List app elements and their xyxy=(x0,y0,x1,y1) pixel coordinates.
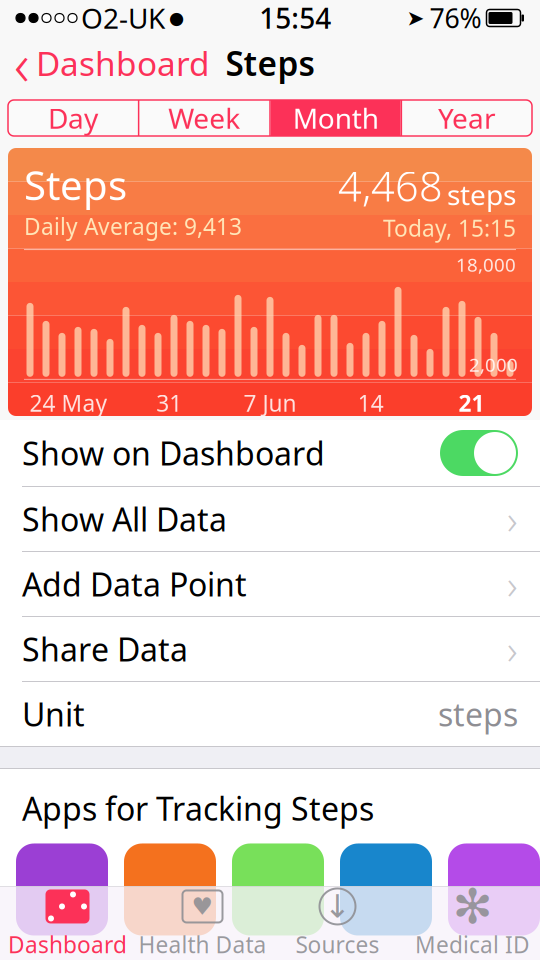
staticText: 2,000 xyxy=(469,352,518,377)
staticText: Year xyxy=(438,99,496,137)
staticText: ➤ xyxy=(406,6,424,30)
staticText: Dashboard xyxy=(8,929,127,959)
button[interactable]: Share Data xyxy=(0,617,540,681)
button[interactable]: Year xyxy=(402,100,532,136)
staticText: ↓ xyxy=(324,888,351,925)
staticText: ✻ xyxy=(452,879,492,934)
staticText: 21 xyxy=(459,388,485,418)
staticText: Day xyxy=(48,99,98,137)
staticText: › xyxy=(507,492,518,545)
staticText: Health Data xyxy=(138,929,266,959)
button[interactable]: App xyxy=(448,843,540,935)
button[interactable]: Show on Dashboard xyxy=(0,420,540,486)
staticText: Show on Dashboard xyxy=(22,432,325,474)
staticText: 31 xyxy=(156,388,182,418)
staticText: Steps xyxy=(24,158,127,211)
staticText: Show All Data xyxy=(22,498,227,540)
staticText: Today, 15:15 xyxy=(383,213,516,243)
staticText: › xyxy=(507,557,518,610)
staticText: Add Data Point xyxy=(22,563,247,605)
staticText: Sources xyxy=(295,929,379,959)
button[interactable]: Month xyxy=(271,100,401,136)
staticText: 14 xyxy=(358,388,384,418)
staticText: Steps xyxy=(225,41,314,85)
staticText: › xyxy=(507,622,518,675)
staticText: 7 Jun xyxy=(243,388,296,418)
button[interactable]: Week xyxy=(139,100,269,136)
staticText: Dashboard xyxy=(36,41,210,85)
button[interactable]: Day xyxy=(8,100,138,136)
staticText: 18,000 xyxy=(456,252,516,277)
staticText: ♥ xyxy=(191,893,213,920)
staticText: Share Data xyxy=(22,628,188,670)
button[interactable]: App xyxy=(124,843,216,935)
button[interactable]: ♥ xyxy=(135,886,270,960)
staticText: 4,468 xyxy=(338,158,443,213)
staticText: Week xyxy=(168,99,240,137)
button[interactable]: ✻ xyxy=(405,886,540,960)
button[interactable]: Add Data Point xyxy=(0,552,540,616)
staticText: ‹ xyxy=(14,24,30,102)
button[interactable]: Show All Data xyxy=(0,487,540,551)
staticText: 76% xyxy=(429,0,481,36)
staticText: 24 May xyxy=(29,388,107,418)
staticText: Daily Average: 9,413 xyxy=(24,211,242,241)
button[interactable]: App xyxy=(340,843,432,935)
staticText: 15:54 xyxy=(259,0,331,37)
button[interactable]: ‹ xyxy=(0,36,224,90)
staticText: Month xyxy=(293,99,379,137)
staticText: ● xyxy=(169,8,184,28)
button[interactable]: ↓ xyxy=(270,886,405,960)
staticText: O2-UK xyxy=(81,0,165,37)
button[interactable]: App xyxy=(16,843,108,935)
button[interactable]: Dashboard xyxy=(0,886,135,960)
staticText: Medical ID xyxy=(415,929,530,959)
staticText: Apps for Tracking Steps xyxy=(22,787,374,829)
staticText: steps xyxy=(438,693,518,735)
staticText: Unit xyxy=(22,693,85,735)
button[interactable]: App xyxy=(232,843,324,935)
button[interactable]: Unit xyxy=(0,682,540,746)
staticText: steps xyxy=(447,176,516,213)
